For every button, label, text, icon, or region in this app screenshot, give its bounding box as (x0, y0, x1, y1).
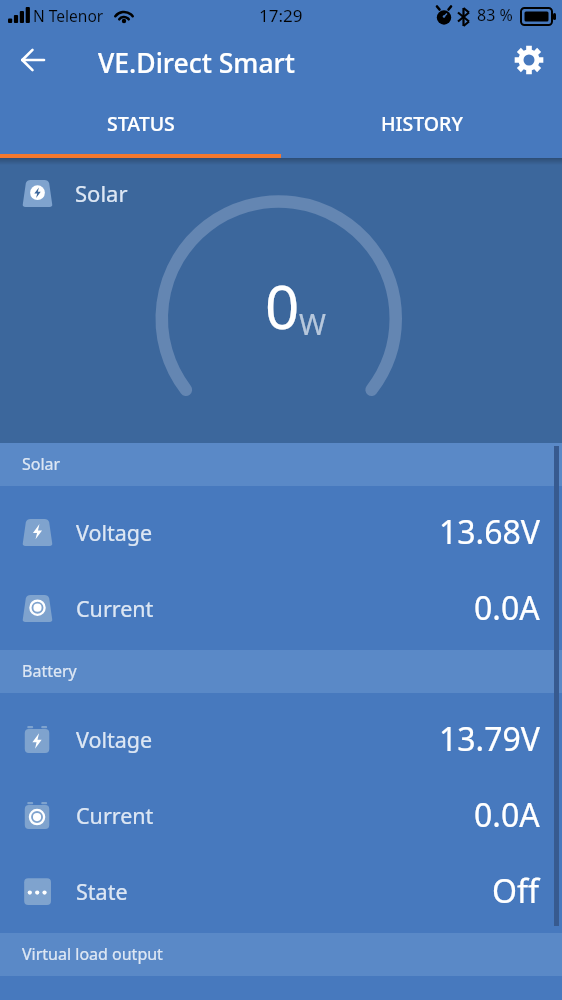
staticText: Current (76, 801, 154, 830)
button[interactable]: HISTORY (281, 96, 562, 158)
staticText: Virtual load output (22, 943, 163, 965)
button[interactable]: Back (9, 36, 57, 84)
staticText: State (76, 877, 128, 906)
staticText: N Telenor (33, 5, 104, 26)
staticText: VE.Direct Smart (98, 45, 295, 81)
staticText: 0.0A (474, 793, 540, 837)
staticText: 13.79V (439, 717, 540, 761)
staticText: W (299, 304, 326, 343)
staticText: Battery (22, 660, 77, 682)
button[interactable]: Current (0, 776, 562, 852)
button[interactable]: Current (0, 569, 562, 645)
staticText: Voltage (76, 725, 153, 754)
button[interactable]: Settings (505, 36, 553, 84)
staticText: 0.0A (474, 586, 540, 630)
staticText: 13.68V (439, 510, 540, 554)
staticText: 17:29 (259, 4, 303, 27)
staticText: 83 % (477, 4, 513, 26)
button[interactable]: State (0, 852, 562, 928)
staticText: HISTORY (381, 110, 463, 137)
staticText: Solar (75, 178, 128, 208)
staticText: Current (76, 594, 154, 623)
staticText: Off (492, 869, 540, 913)
staticText: Solar (22, 453, 61, 475)
button[interactable]: Voltage (0, 700, 562, 776)
staticText: 0 (265, 265, 300, 347)
staticText: STATUS (107, 110, 175, 137)
button[interactable]: STATUS (0, 96, 281, 158)
staticText: Voltage (76, 518, 153, 547)
button[interactable]: Voltage (0, 493, 562, 569)
